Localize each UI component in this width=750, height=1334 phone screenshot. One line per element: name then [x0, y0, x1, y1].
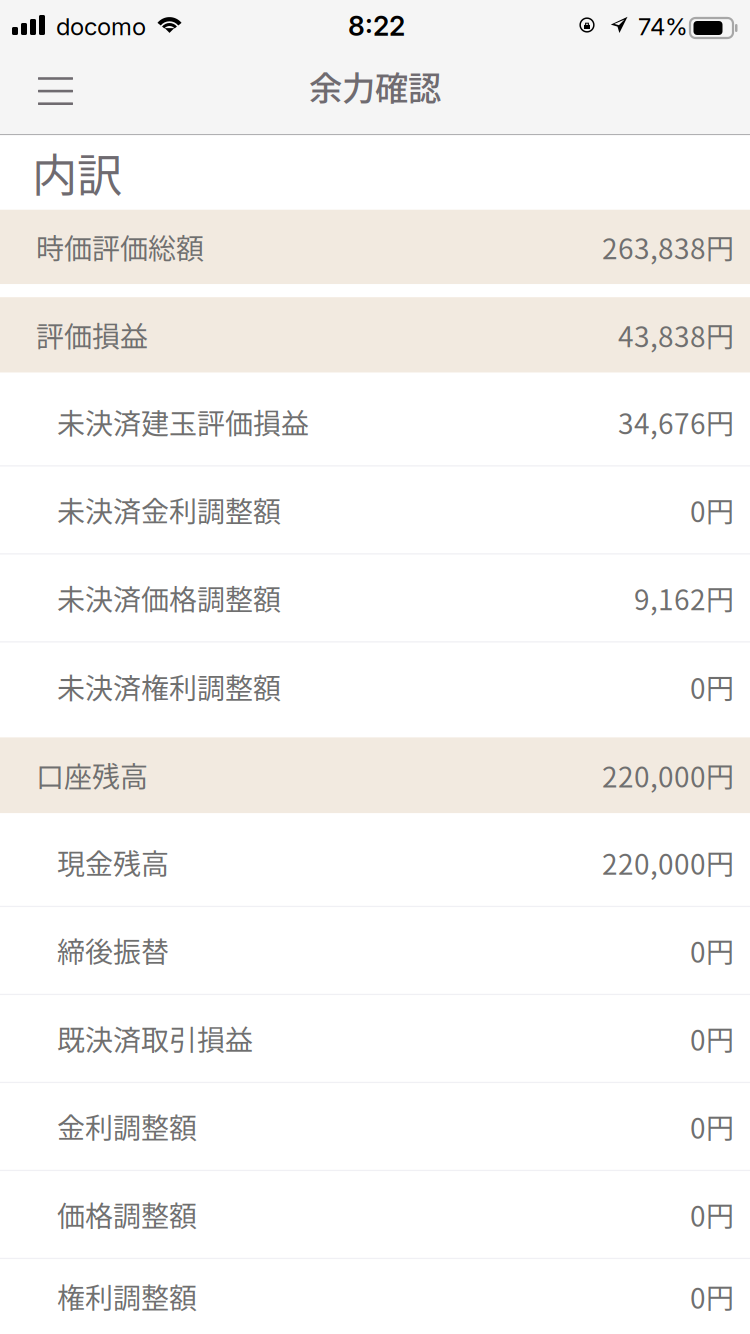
staticText: 未決済権利調整額	[57, 666, 281, 707]
button[interactable]: 口座残高	[0, 737, 750, 813]
staticText: 220,000円	[602, 842, 734, 883]
staticText: 74%	[638, 12, 688, 41]
staticText: 34,676円	[618, 402, 734, 442]
staticText: 0円	[690, 1018, 734, 1059]
staticText: 未決済価格調整額	[57, 578, 281, 618]
staticText: 43,838円	[618, 315, 734, 355]
staticText: 余力確認	[309, 62, 441, 110]
button[interactable]: メニュー	[0, 45, 111, 133]
button[interactable]: 未決済権利調整額	[0, 643, 750, 731]
button[interactable]: 権利調整額	[0, 1259, 750, 1334]
staticText: 0円	[690, 666, 734, 707]
button[interactable]: 金利調整額	[0, 1083, 750, 1170]
staticText: 263,838円	[602, 227, 734, 267]
button[interactable]: 評価損益	[0, 297, 750, 373]
staticText: docomo	[56, 12, 146, 41]
staticText: 9,162円	[634, 578, 734, 618]
staticText: 0円	[690, 1194, 734, 1235]
staticText: 0円	[690, 930, 734, 971]
staticText: 締後振替	[57, 930, 169, 971]
button[interactable]: 現金残高	[0, 819, 750, 906]
button[interactable]: 未決済金利調整額	[0, 467, 750, 553]
staticText: 8:22	[348, 10, 405, 42]
staticText: 0円	[690, 1106, 734, 1147]
staticText: 内訳	[32, 140, 122, 205]
button[interactable]: 未決済価格調整額	[0, 555, 750, 641]
staticText: 未決済金利調整額	[57, 490, 281, 530]
button[interactable]: 時価評価総額	[0, 210, 750, 284]
staticText: 未決済建玉評価損益	[57, 402, 309, 442]
staticText: 口座残高	[36, 755, 148, 796]
button[interactable]: 価格調整額	[0, 1171, 750, 1258]
button[interactable]: 未決済建玉評価損益	[0, 379, 750, 465]
button[interactable]: 既決済取引損益	[0, 995, 750, 1082]
staticText: 価格調整額	[57, 1194, 197, 1235]
staticText: 220,000円	[602, 755, 734, 796]
staticText: 時価評価総額	[36, 227, 204, 267]
staticText: 既決済取引損益	[57, 1018, 253, 1059]
staticText: 現金残高	[57, 842, 169, 883]
staticText: 評価損益	[36, 315, 148, 355]
staticText: 金利調整額	[57, 1106, 197, 1147]
staticText: 0円	[690, 1276, 734, 1317]
button[interactable]: 締後振替	[0, 907, 750, 994]
staticText: 0円	[690, 490, 734, 530]
staticText: 権利調整額	[57, 1276, 197, 1317]
